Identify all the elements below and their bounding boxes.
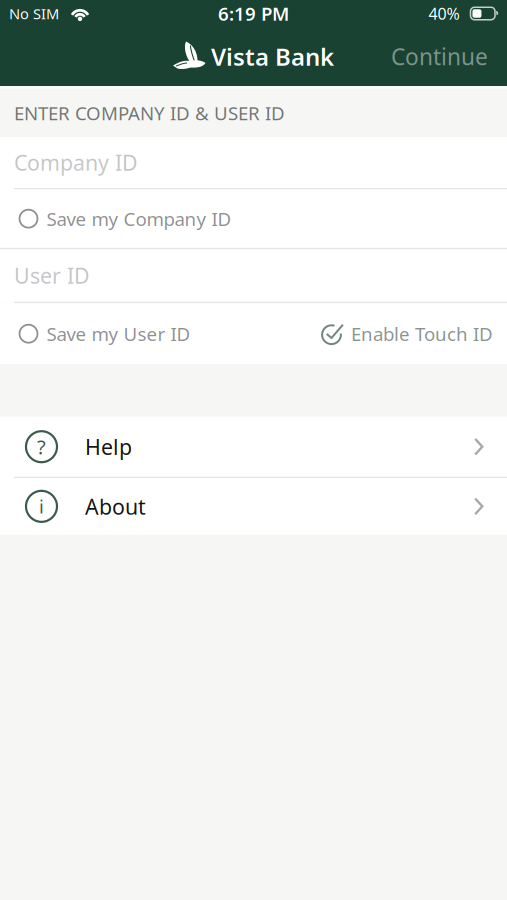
staticText: Help xyxy=(85,432,132,461)
staticText: User ID xyxy=(14,261,90,290)
button[interactable]: Continue xyxy=(391,41,507,71)
staticText: No SIM xyxy=(9,4,59,23)
button[interactable]: Company ID xyxy=(0,137,507,188)
button[interactable]: Enable Touch ID xyxy=(319,321,507,346)
staticText: ? xyxy=(37,433,46,460)
staticText: About xyxy=(85,492,146,520)
staticText: Save my Company ID xyxy=(46,206,231,231)
button[interactable]: User ID xyxy=(0,249,507,302)
button[interactable]: Save my Company ID xyxy=(0,189,507,248)
staticText: ENTER COMPANY ID & USER ID xyxy=(14,101,285,125)
button[interactable]: ? xyxy=(0,417,507,477)
staticText: Enable Touch ID xyxy=(351,321,493,346)
staticText: 6:19 PM xyxy=(218,1,289,26)
button[interactable]: Save my User ID xyxy=(0,321,190,346)
button[interactable]: i xyxy=(0,478,507,535)
staticText: 40% xyxy=(428,3,459,24)
staticText: Save my User ID xyxy=(46,321,190,346)
staticText: Company ID xyxy=(14,148,138,177)
staticText: i xyxy=(39,494,44,519)
staticText: Vista Bank xyxy=(211,41,334,72)
staticText: Continue xyxy=(391,41,488,71)
